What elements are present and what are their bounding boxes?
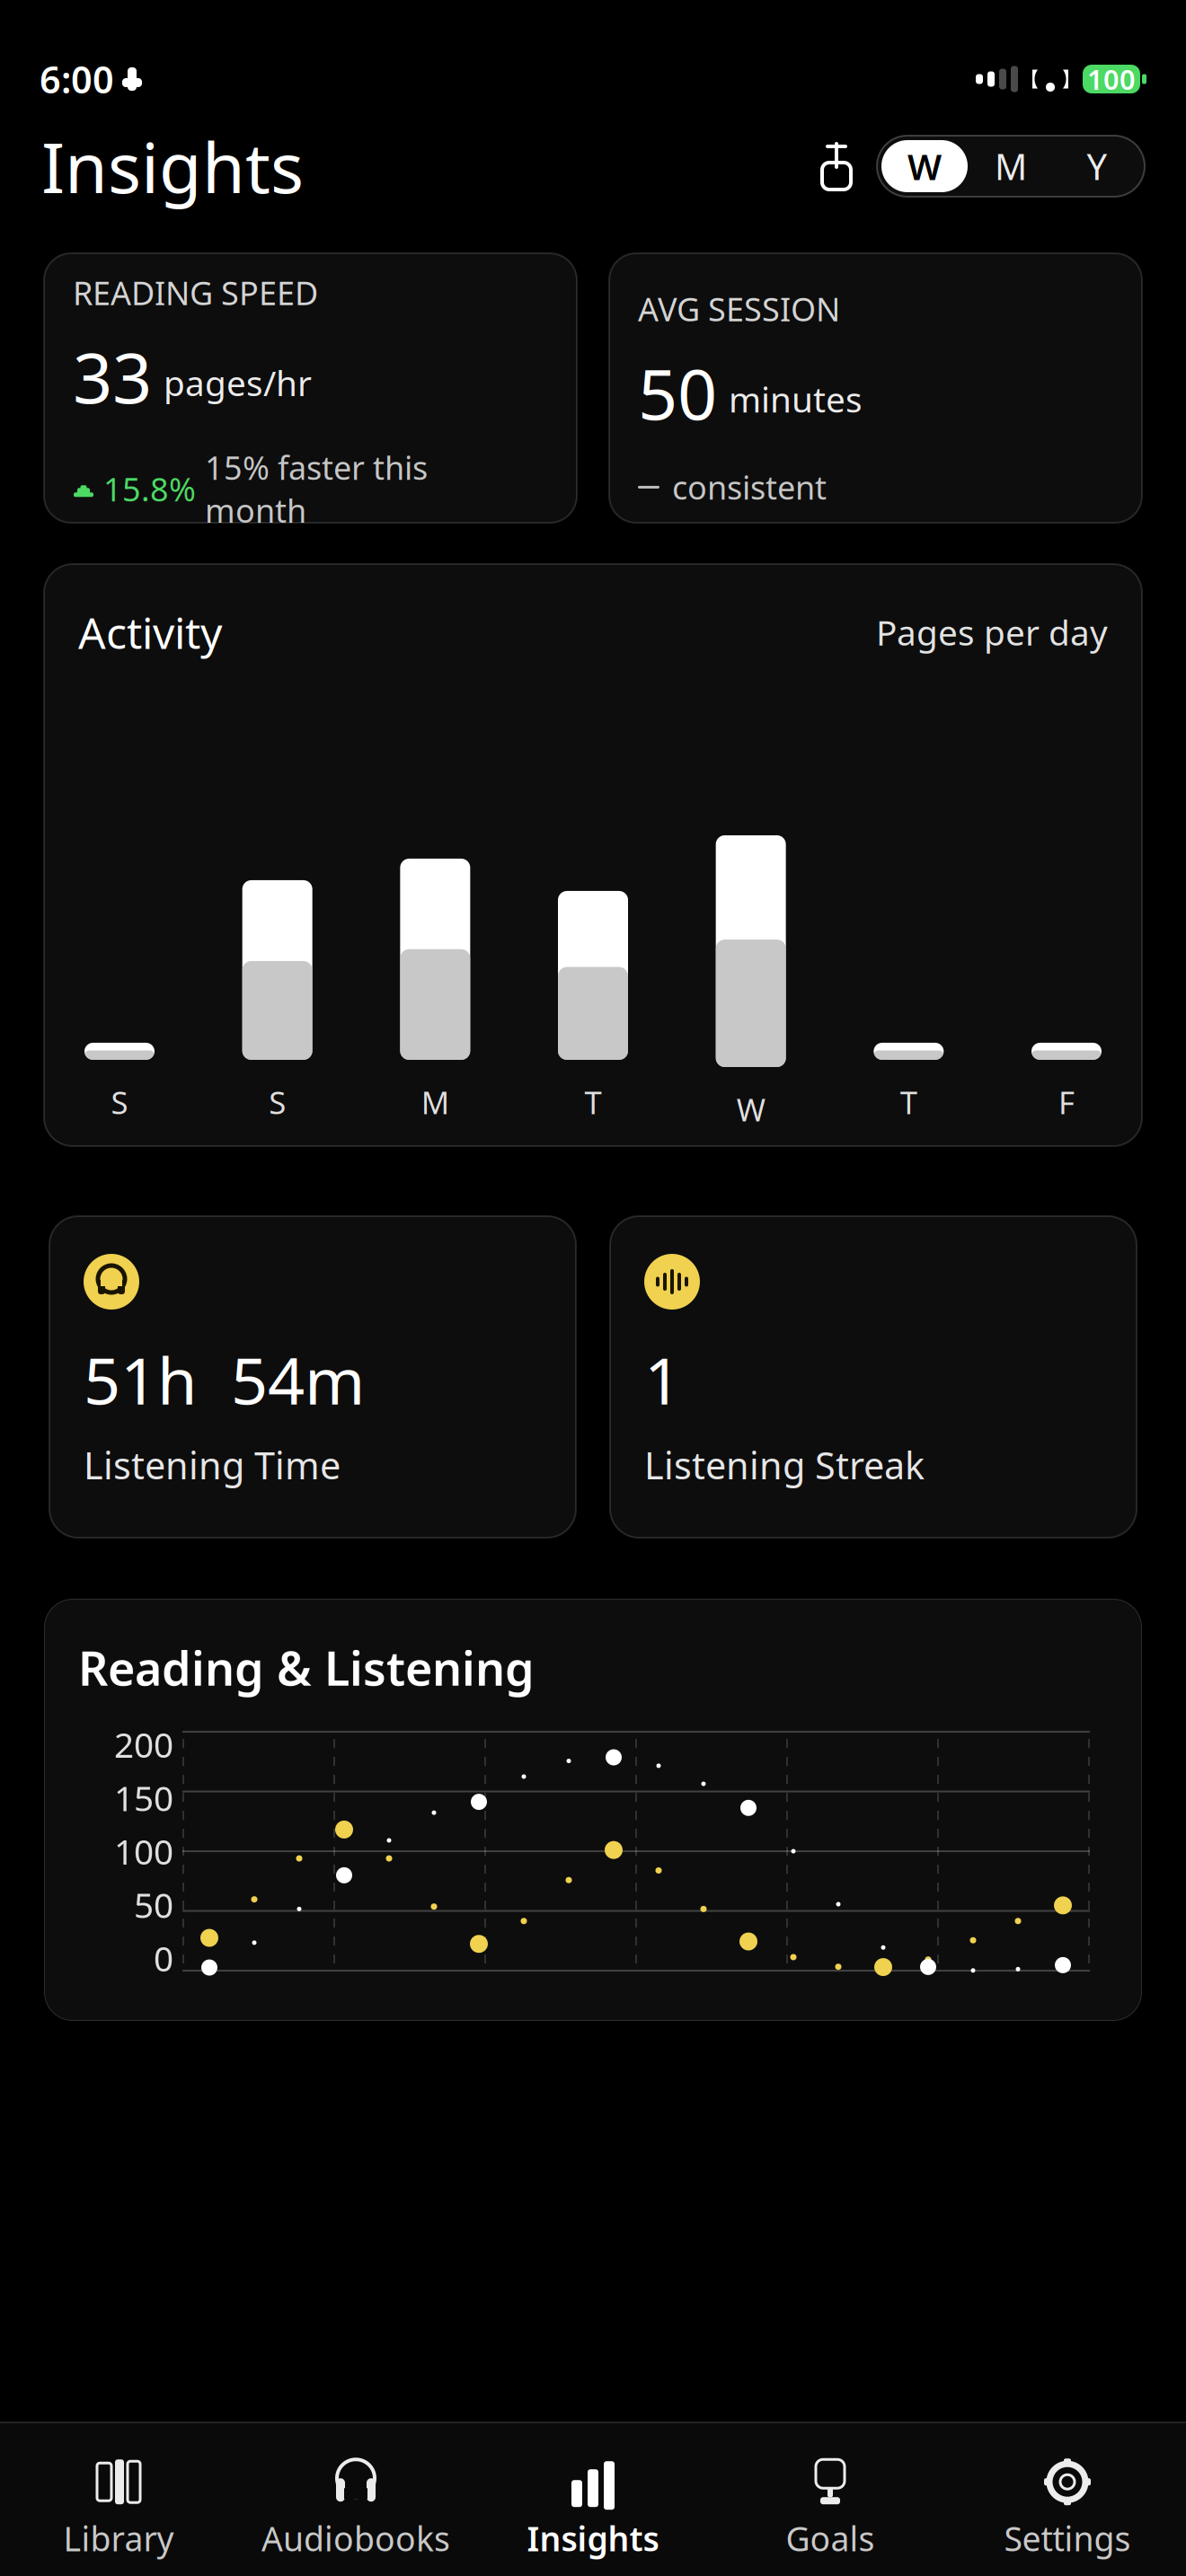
staticText: 1 — [644, 1337, 681, 1422]
staticText: W — [907, 142, 942, 190]
staticText: T — [900, 1081, 917, 1123]
staticText: S — [269, 1081, 286, 1123]
staticText: 50 — [134, 1882, 173, 1928]
staticText: W — [736, 1089, 765, 1130]
staticText: Library — [63, 2516, 174, 2561]
staticText: 200 — [114, 1721, 173, 1767]
staticText: AVG SESSION — [638, 287, 840, 330]
staticText: Goals — [786, 2516, 875, 2561]
staticText: Insights — [527, 2516, 659, 2561]
staticText: 100 — [114, 1828, 173, 1874]
staticText: 0 — [154, 1935, 173, 1981]
button[interactable]: Goals — [712, 2431, 949, 2566]
staticText: pages/hr — [164, 360, 312, 406]
button[interactable]: Insights — [474, 2431, 712, 2566]
button[interactable]: READING SPEED — [44, 253, 577, 523]
staticText: Listening Streak — [644, 1440, 925, 1490]
staticText: M — [995, 142, 1027, 190]
staticText: 6:00 — [40, 54, 114, 104]
button[interactable]: Audiobooks — [237, 2431, 474, 2566]
staticText: F — [1058, 1081, 1075, 1123]
staticText: minutes — [729, 376, 863, 422]
staticText: consistent — [672, 466, 827, 509]
staticText: T — [584, 1081, 602, 1123]
staticText: Insights — [41, 120, 304, 212]
button[interactable]: Listening Time — [49, 1216, 576, 1538]
staticText: Listening Time — [84, 1440, 341, 1490]
staticText: Y — [1087, 142, 1107, 190]
staticText: 15.8% — [103, 467, 196, 510]
staticText: M — [421, 1081, 449, 1123]
button[interactable]: Settings — [949, 2431, 1186, 2566]
staticText: 15% faster this month — [205, 446, 428, 532]
staticText: 100 — [1087, 61, 1136, 97]
staticText: Activity — [78, 604, 222, 661]
button[interactable]: Library — [0, 2431, 237, 2566]
staticText: 51h 54m — [84, 1337, 365, 1422]
staticText: Reading & Listening — [78, 1636, 535, 1699]
staticText: Pages per day — [876, 609, 1108, 655]
button[interactable]: W — [881, 140, 968, 192]
button[interactable]: AVG SESSION — [609, 253, 1142, 523]
staticText: 150 — [114, 1775, 173, 1821]
staticText: 50 — [638, 347, 717, 439]
staticText: 33 — [73, 330, 152, 423]
button[interactable]: M — [968, 140, 1054, 192]
staticText: Settings — [1004, 2516, 1131, 2561]
staticText: S — [111, 1081, 128, 1123]
button[interactable]: Y — [1054, 140, 1140, 192]
staticText: READING SPEED — [73, 271, 318, 314]
button[interactable]: Listening Streak — [610, 1216, 1137, 1538]
button[interactable]: Share — [810, 137, 863, 196]
staticText: Audiobooks — [261, 2516, 450, 2561]
